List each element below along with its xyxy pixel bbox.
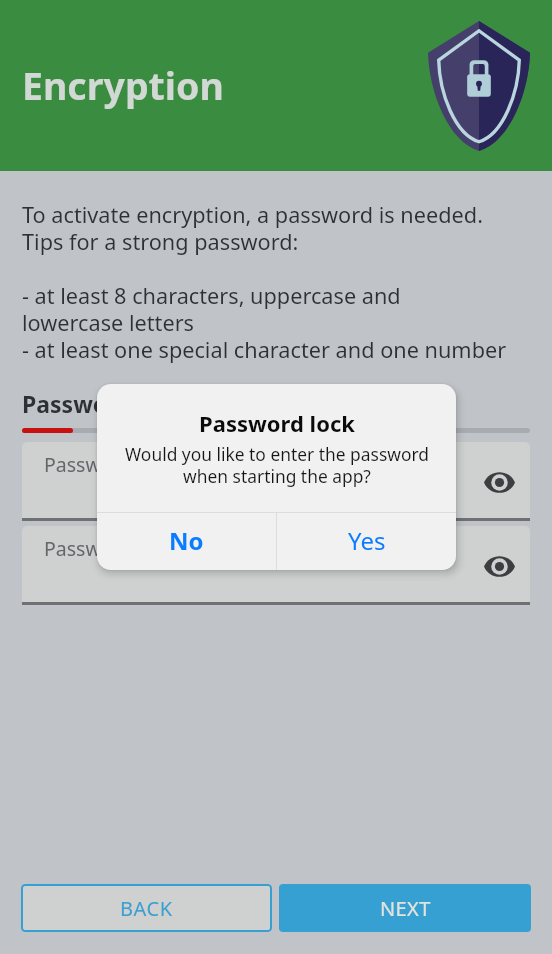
staticText: Password — [22, 388, 132, 419]
staticText: BACK — [120, 895, 173, 922]
staticText: To activate encryption, a password is ne… — [22, 200, 507, 364]
button[interactable]: No — [97, 513, 276, 570]
staticText: Password — [44, 451, 133, 478]
staticText: Would you like to enter the password whe… — [125, 442, 429, 488]
staticText: No — [169, 524, 204, 557]
button[interactable]: BACK — [21, 884, 272, 932]
staticText: NEXT — [380, 895, 431, 922]
button[interactable]: Yes — [277, 513, 456, 570]
staticText: Encryption — [22, 60, 224, 111]
staticText: Yes — [348, 524, 386, 557]
button[interactable]: Show password — [476, 543, 522, 589]
button[interactable]: NEXT — [279, 884, 531, 932]
staticText: Password lock — [199, 408, 355, 438]
staticText: Password — [44, 535, 133, 562]
button[interactable]: Show password — [476, 459, 522, 505]
